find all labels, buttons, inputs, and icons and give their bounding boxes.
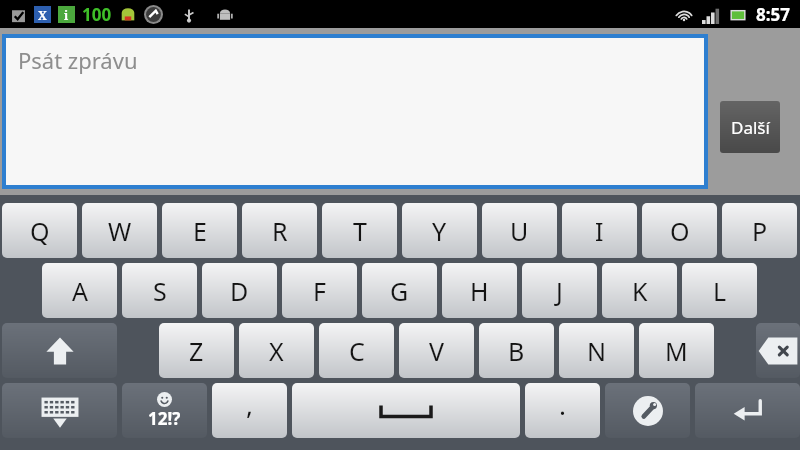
staticText: K <box>632 274 648 308</box>
staticText: W <box>108 214 132 248</box>
button[interactable]: O <box>642 203 717 258</box>
staticText: U <box>510 214 529 248</box>
button[interactable]: Symbols <box>122 383 207 438</box>
button[interactable]: Comma <box>212 383 287 438</box>
button[interactable]: Period <box>525 383 600 438</box>
button[interactable]: K <box>602 263 677 318</box>
staticText: I <box>595 214 604 248</box>
button[interactable]: L <box>682 263 757 318</box>
staticText: . <box>559 387 566 422</box>
button[interactable]: J <box>522 263 597 318</box>
button[interactable]: S <box>122 263 197 318</box>
staticText: B <box>508 334 525 368</box>
staticText: Z <box>189 334 204 368</box>
staticText: X <box>269 334 284 368</box>
button[interactable]: Shift <box>2 323 117 378</box>
staticText: Y <box>432 214 447 248</box>
button[interactable]: P <box>722 203 797 258</box>
staticText: 100 <box>82 3 112 26</box>
button[interactable]: Z <box>159 323 234 378</box>
staticText: 8:57 <box>756 3 790 26</box>
button[interactable]: M <box>639 323 714 378</box>
staticText: J <box>556 274 563 308</box>
button[interactable]: E <box>162 203 237 258</box>
staticText: 12!? <box>148 407 181 430</box>
button[interactable]: Y <box>402 203 477 258</box>
button[interactable]: Backspace <box>756 323 800 378</box>
staticText: M <box>665 334 688 368</box>
button[interactable]: H <box>442 263 517 318</box>
staticText: E <box>193 214 207 248</box>
staticText: F <box>313 274 326 308</box>
button[interactable]: N <box>559 323 634 378</box>
button[interactable]: F <box>282 263 357 318</box>
staticText: Psát zprávu <box>18 45 138 75</box>
button[interactable]: Enter <box>695 383 800 438</box>
staticText: A <box>72 274 88 308</box>
staticText: Další <box>731 116 770 139</box>
button[interactable]: G <box>362 263 437 318</box>
button[interactable]: V <box>399 323 474 378</box>
staticText: N <box>587 334 607 368</box>
button[interactable]: Settings <box>605 383 690 438</box>
staticText: X <box>38 7 47 23</box>
button[interactable]: Space <box>292 383 520 438</box>
button[interactable]: A <box>42 263 117 318</box>
button[interactable]: B <box>479 323 554 378</box>
staticText: L <box>713 274 727 308</box>
staticText: R <box>272 214 288 248</box>
button[interactable]: R <box>242 203 317 258</box>
staticText: , <box>246 387 253 422</box>
button[interactable]: T <box>322 203 397 258</box>
staticText: G <box>390 274 409 308</box>
staticText: Q <box>30 214 50 248</box>
staticText: H <box>470 274 489 308</box>
button[interactable]: Hide keyboard <box>2 383 117 438</box>
button[interactable]: D <box>202 263 277 318</box>
button[interactable]: Q <box>2 203 77 258</box>
staticText: T <box>353 214 367 248</box>
button[interactable]: W <box>82 203 157 258</box>
button[interactable]: U <box>482 203 557 258</box>
button[interactable]: C <box>319 323 394 378</box>
staticText: C <box>349 334 365 368</box>
button[interactable]: I <box>562 203 637 258</box>
staticText: O <box>670 214 690 248</box>
button[interactable]: Psát zprávu <box>6 38 704 185</box>
staticText: P <box>752 214 768 248</box>
staticText: D <box>230 274 249 308</box>
staticText: V <box>429 334 445 368</box>
staticText: S <box>153 274 167 308</box>
button[interactable]: Další <box>720 101 780 153</box>
button[interactable]: X <box>239 323 314 378</box>
staticText: i <box>64 7 69 23</box>
